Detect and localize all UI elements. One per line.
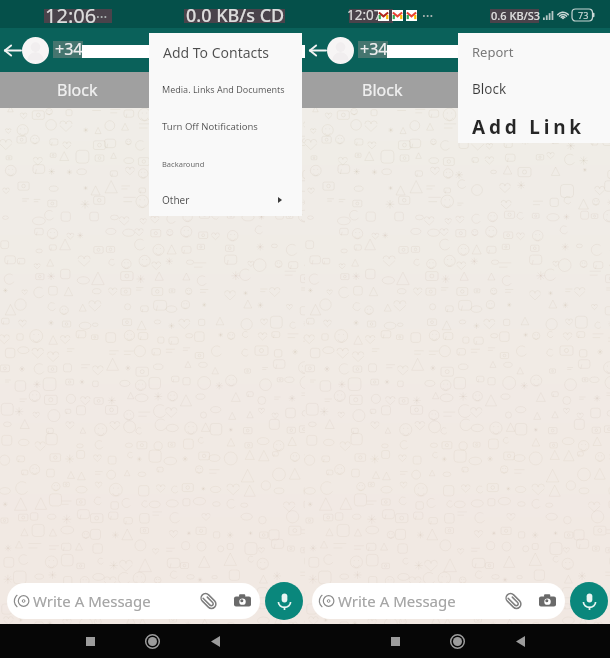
button[interactable]: Contact avatar (327, 37, 354, 64)
button[interactable]: Add Link (458, 111, 610, 143)
button[interactable]: Voice message (265, 582, 303, 620)
button[interactable]: Block (458, 73, 610, 105)
staticText: Turn Off Notifications (162, 120, 258, 133)
staticText: Add Link (472, 114, 585, 140)
button[interactable]: Media. Links And Documents (149, 73, 302, 105)
button[interactable]: Voice message (570, 582, 608, 620)
button[interactable]: Attach (200, 592, 217, 610)
staticText: 12:06 (45, 2, 97, 29)
other: Emoji (14, 593, 30, 609)
staticText: Media. Links And Documents (162, 83, 285, 95)
staticText: Other (162, 193, 190, 207)
staticText: ... (422, 2, 434, 21)
staticText: Block (472, 80, 507, 98)
button[interactable]: Camera (539, 593, 556, 609)
staticText: Backaround (162, 159, 205, 169)
other: Emoji (319, 593, 335, 609)
staticText: 12:07 (347, 6, 382, 24)
button[interactable]: Back (201, 627, 229, 655)
button[interactable]: Home (443, 627, 471, 655)
button[interactable]: Block (0, 72, 305, 108)
staticText: Block (57, 79, 98, 101)
staticText: Write A Message (33, 591, 151, 611)
button[interactable]: Recents (381, 627, 409, 655)
staticText: +34 (360, 38, 388, 60)
button[interactable]: Home (138, 627, 166, 655)
button[interactable]: Emoji (312, 583, 565, 619)
button[interactable]: Other (149, 184, 302, 216)
button[interactable]: Backaround (149, 148, 302, 180)
button[interactable]: Block (305, 72, 610, 108)
staticText: ... (96, 3, 108, 22)
staticText: +34 (55, 38, 83, 60)
staticText: 0.6 KB/S3 (491, 8, 541, 23)
staticText: Report (472, 43, 514, 61)
button[interactable]: Back (304, 37, 330, 63)
button[interactable]: Back (506, 627, 534, 655)
button[interactable]: Contact avatar (22, 37, 49, 64)
staticText: Write A Message (338, 591, 456, 611)
button[interactable]: Recents (76, 627, 104, 655)
button[interactable]: Turn Off Notifications (149, 110, 302, 142)
button[interactable]: Attach (505, 592, 522, 610)
button[interactable]: Back (0, 37, 25, 63)
button[interactable]: Report (458, 36, 610, 68)
staticText: 73 (578, 9, 589, 21)
button[interactable]: Emoji (7, 583, 260, 619)
staticText: 0.0 KB/s CD (186, 3, 285, 28)
staticText: Block (362, 79, 403, 101)
staticText: Add To Contacts (163, 43, 270, 62)
button[interactable]: Camera (234, 593, 251, 609)
button[interactable]: Add To Contacts (149, 36, 302, 68)
